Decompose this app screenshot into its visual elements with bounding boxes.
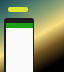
button[interactable] xyxy=(8,7,28,12)
